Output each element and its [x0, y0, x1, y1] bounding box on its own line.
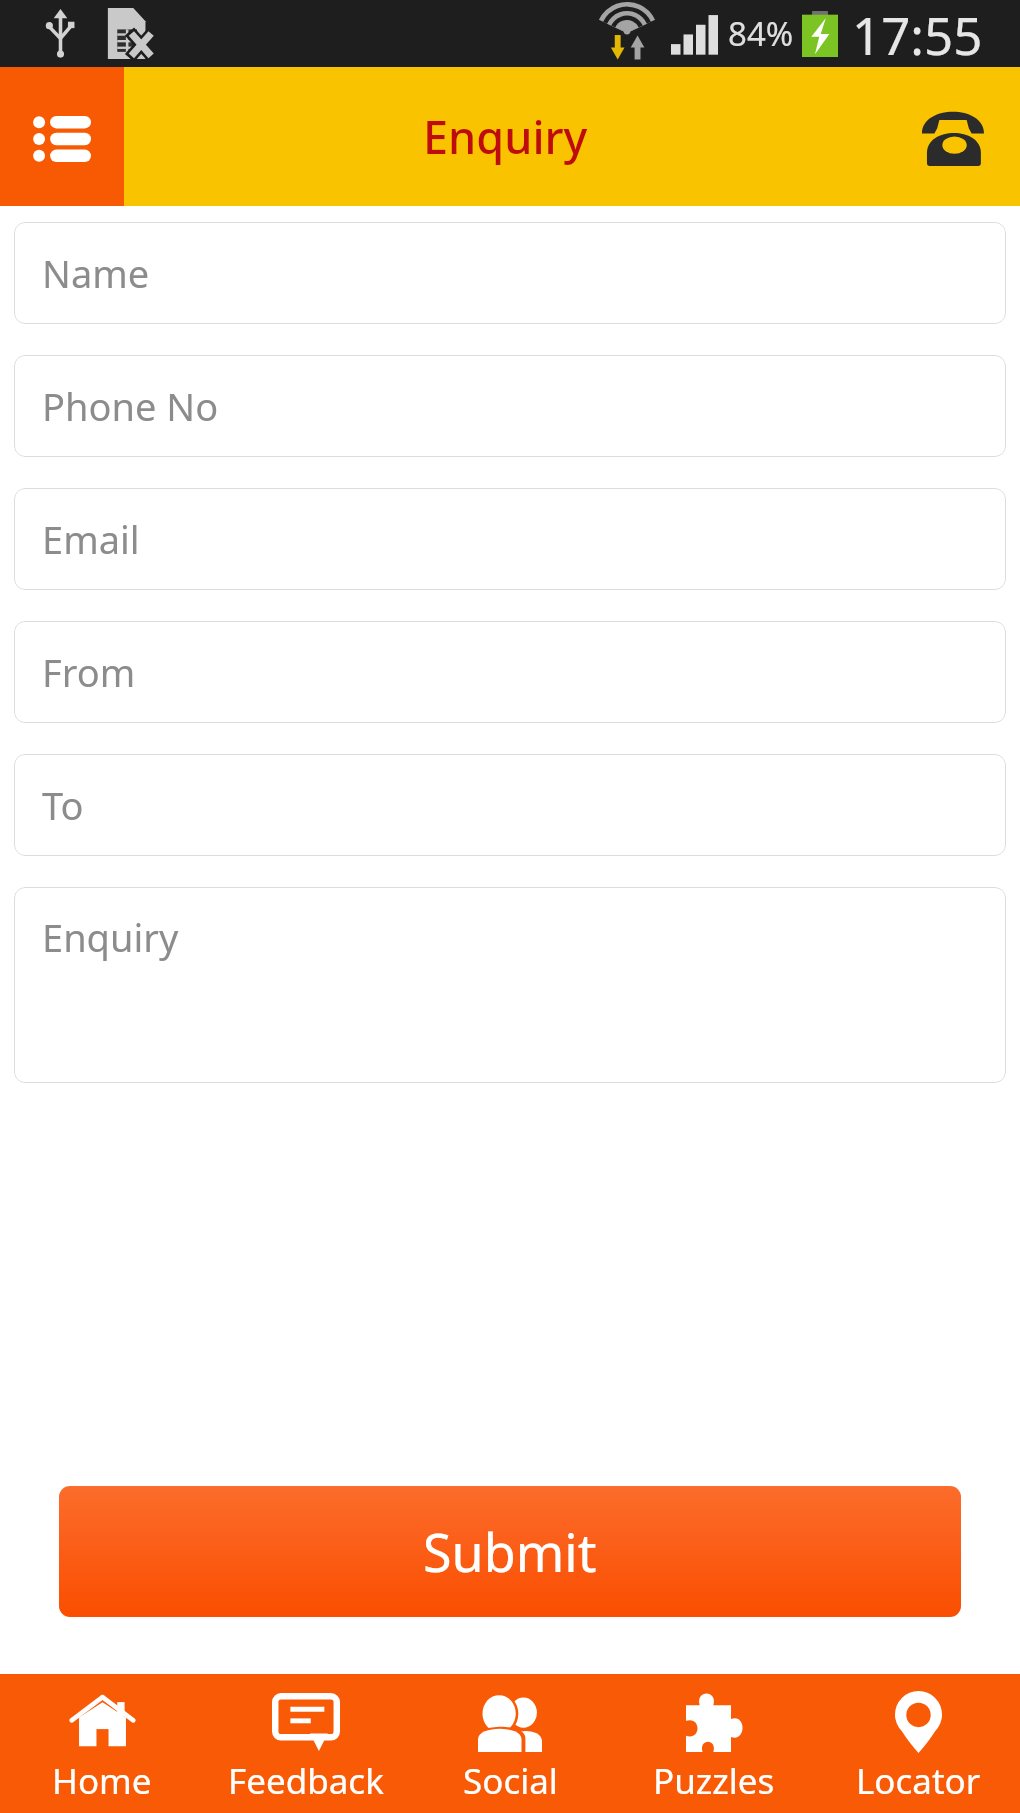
staticText: Enquiry — [42, 911, 179, 963]
button[interactable]: From — [14, 621, 1006, 723]
staticText: Home — [52, 1757, 152, 1805]
staticText: 17:55 — [852, 0, 983, 67]
button[interactable]: Phone No — [14, 355, 1006, 457]
staticText: Enquiry — [423, 106, 588, 167]
staticText: 84% — [728, 11, 794, 56]
staticText: Social — [463, 1757, 558, 1805]
button[interactable]: Call — [886, 67, 1020, 206]
button[interactable]: Locator — [816, 1674, 1020, 1813]
staticText: Feedback — [228, 1757, 384, 1805]
button[interactable]: Email — [14, 488, 1006, 590]
button[interactable]: Social — [408, 1674, 612, 1813]
button[interactable]: Menu — [0, 67, 124, 206]
button[interactable]: Feedback — [204, 1674, 408, 1813]
button[interactable]: Home — [0, 1674, 204, 1813]
staticText: Email — [42, 513, 140, 565]
button[interactable]: Enquiry — [14, 887, 1006, 1083]
staticText: Submit — [423, 1516, 597, 1587]
staticText: Puzzles — [653, 1757, 775, 1805]
staticText: Name — [42, 247, 150, 299]
button[interactable]: Name — [14, 222, 1006, 324]
button[interactable]: Puzzles — [612, 1674, 816, 1813]
staticText: From — [42, 646, 136, 698]
button[interactable]: Submit — [59, 1486, 961, 1617]
button[interactable]: To — [14, 754, 1006, 856]
staticText: Phone No — [42, 380, 219, 432]
staticText: To — [42, 779, 84, 831]
staticText: Locator — [856, 1757, 981, 1805]
